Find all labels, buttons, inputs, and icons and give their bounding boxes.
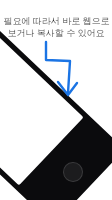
staticText: 보거나 복사할 수 있어요 <box>7 26 105 38</box>
staticText: 필요에 따라서 바로 웹으로 <box>3 14 110 26</box>
